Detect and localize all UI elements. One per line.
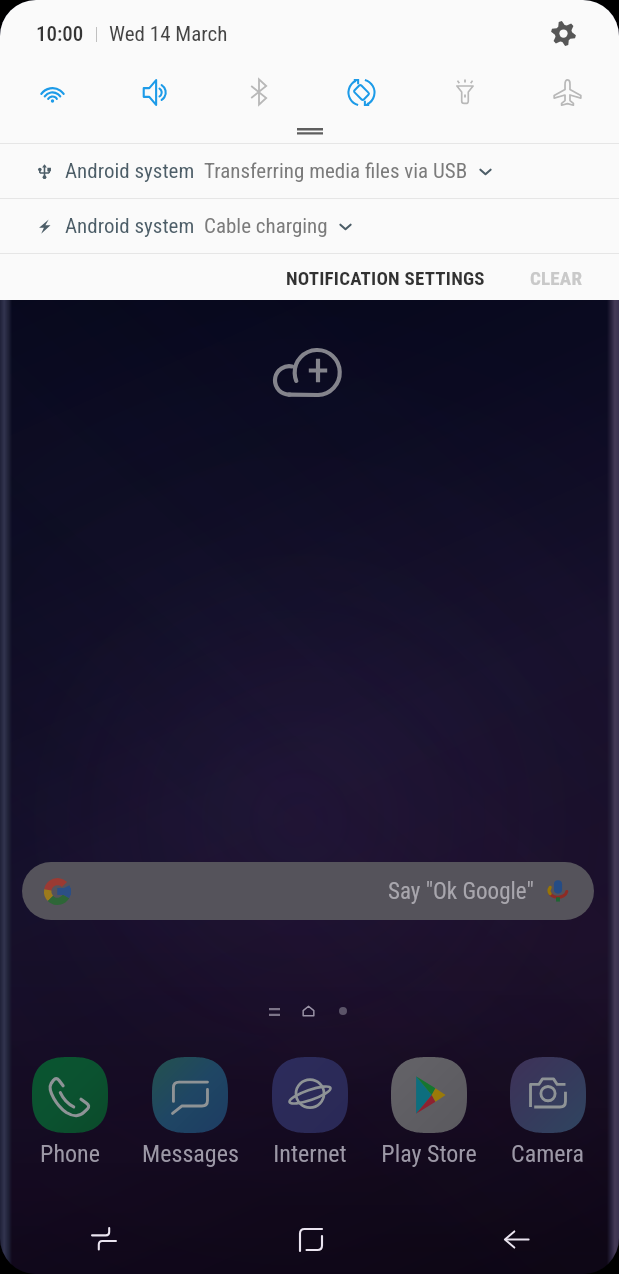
staticText: Transferring media files via USB — [204, 159, 468, 184]
staticText: 10:00 — [36, 22, 84, 47]
button[interactable]: Phone — [10, 1057, 130, 1168]
button[interactable]: Android system — [0, 144, 619, 198]
staticText: Messages — [142, 1140, 239, 1168]
button[interactable]: Settings — [547, 17, 579, 49]
button[interactable]: Sound — [104, 66, 207, 118]
staticText: NOTIFICATION SETTINGS — [286, 267, 485, 289]
staticText: Android system — [65, 214, 195, 239]
staticText: Wed 14 March — [109, 22, 228, 47]
button[interactable]: NOTIFICATION SETTINGS — [276, 256, 495, 300]
button[interactable]: Messages — [130, 1057, 250, 1168]
button[interactable]: Play Store — [369, 1057, 488, 1168]
button[interactable]: CLEAR — [520, 256, 593, 300]
staticText: CLEAR — [530, 267, 583, 289]
staticText: Camera — [511, 1140, 584, 1168]
staticText: Say "Ok Google" — [388, 878, 534, 905]
button[interactable]: Flight mode — [516, 66, 619, 118]
button[interactable]: Bluetooth — [207, 66, 310, 118]
button[interactable]: Home — [207, 1204, 413, 1274]
button[interactable]: Camera — [488, 1057, 607, 1168]
button[interactable]: Recents — [0, 1204, 207, 1274]
button[interactable]: Back — [413, 1204, 619, 1274]
button[interactable]: Flashlight — [413, 66, 516, 118]
button[interactable]: Internet — [250, 1057, 369, 1168]
button[interactable]: Say "Ok Google" — [22, 862, 594, 920]
button[interactable]: Wi-Fi — [0, 66, 104, 118]
button[interactable]: Android system — [0, 199, 619, 253]
staticText: Cable charging — [204, 214, 328, 239]
staticText: Internet — [273, 1140, 347, 1168]
staticText: Phone — [40, 1140, 100, 1168]
staticText: Play Store — [381, 1140, 477, 1168]
button[interactable]: Auto rotate — [310, 66, 413, 118]
staticText: Android system — [65, 159, 195, 184]
